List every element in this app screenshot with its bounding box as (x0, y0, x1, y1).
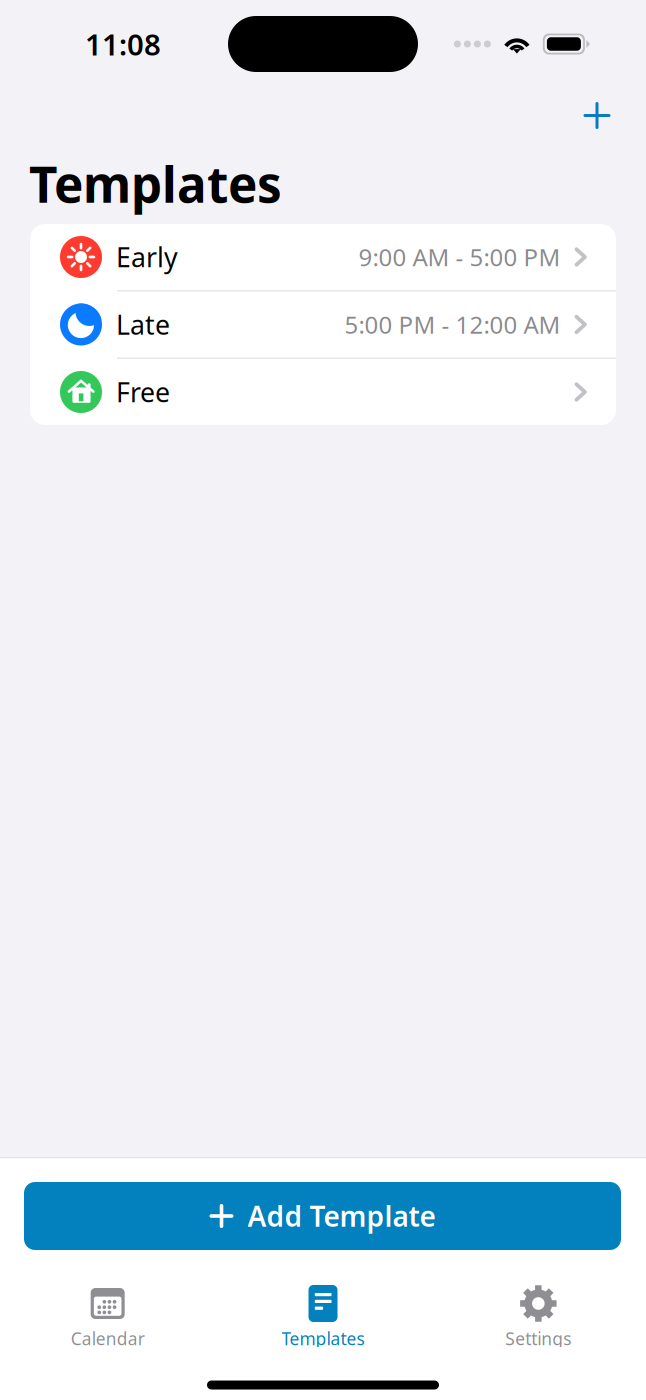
button[interactable]: Templates (215, 1288, 431, 1347)
staticText: 5:00 PM - 12:00 AM (344, 309, 560, 340)
staticText: 9:00 AM - 5:00 PM (358, 241, 560, 273)
staticText: Early (116, 239, 178, 275)
button[interactable]: Calendar (0, 1288, 215, 1347)
button[interactable]: Late (30, 291, 616, 357)
staticText: Late (116, 307, 170, 342)
staticText: Calendar (71, 1327, 145, 1350)
button[interactable]: Settings (431, 1288, 646, 1347)
button[interactable]: Free (30, 359, 616, 425)
button[interactable]: Early (30, 224, 616, 290)
staticText: Free (116, 374, 170, 410)
staticText: Add Template (247, 1197, 435, 1235)
staticText: Settings (505, 1327, 571, 1350)
staticText: Templates (281, 1327, 364, 1350)
staticText: 11:08 (85, 24, 161, 63)
staticText: Templates (29, 151, 282, 216)
button[interactable]: Add Template (24, 1182, 621, 1250)
button[interactable]: Add Template (568, 88, 626, 142)
